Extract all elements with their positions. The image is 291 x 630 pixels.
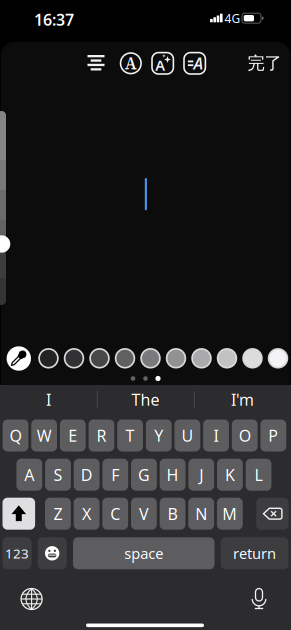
button[interactable]: K: [217, 459, 243, 491]
button[interactable]: I: [3, 386, 93, 412]
staticText: T: [126, 425, 135, 446]
button[interactable]: Text alignment: [86, 54, 106, 72]
button[interactable]: 完了: [242, 50, 286, 76]
button[interactable]: Gray 7: [191, 348, 212, 369]
button[interactable]: H: [160, 459, 185, 491]
button[interactable]: Q: [3, 419, 28, 451]
staticText: A: [24, 464, 34, 485]
staticText: N: [195, 503, 207, 524]
staticText: H: [167, 464, 179, 485]
button[interactable]: Writing tools: [151, 51, 175, 75]
button[interactable]: Emoji: [38, 537, 67, 569]
staticText: A: [125, 52, 137, 75]
button[interactable]: L: [246, 459, 271, 491]
button[interactable]: I'm: [197, 386, 287, 412]
staticText: V: [139, 503, 149, 524]
button[interactable]: Gray 8: [216, 348, 237, 369]
button[interactable]: M: [217, 498, 243, 530]
staticText: 完了: [247, 53, 281, 74]
button[interactable]: R: [88, 419, 114, 451]
staticText: S: [53, 464, 62, 485]
button[interactable]: C: [102, 498, 128, 530]
button[interactable]: Delete: [256, 498, 289, 530]
button[interactable]: T: [117, 419, 143, 451]
button[interactable]: E: [60, 419, 86, 451]
staticText: Y: [154, 425, 163, 446]
button[interactable]: Z: [45, 498, 71, 530]
button[interactable]: space: [73, 537, 214, 569]
staticText: G: [138, 464, 150, 485]
button[interactable]: Color picker: [7, 346, 31, 371]
staticText: A: [155, 55, 165, 75]
button[interactable]: The: [100, 386, 190, 412]
button[interactable]: X: [74, 498, 99, 530]
button[interactable]: B: [160, 498, 185, 530]
staticText: space: [124, 544, 163, 563]
button[interactable]: N: [188, 498, 214, 530]
button[interactable]: return: [221, 537, 288, 569]
staticText: M: [222, 503, 237, 524]
button[interactable]: 123: [2, 537, 32, 569]
staticText: P: [268, 425, 278, 446]
button[interactable]: Y: [146, 419, 172, 451]
staticText: I: [213, 425, 218, 446]
button[interactable]: W: [31, 419, 57, 451]
button[interactable]: Gray 1: [38, 348, 59, 369]
staticText: The: [131, 389, 159, 410]
button[interactable]: Dictate: [246, 586, 272, 612]
staticText: E: [68, 425, 77, 446]
staticText: I'm: [231, 389, 254, 410]
button[interactable]: Gray 6: [165, 348, 186, 369]
button[interactable]: Gray 3: [89, 348, 110, 369]
button[interactable]: Gray 2: [63, 348, 84, 369]
staticText: L: [255, 464, 263, 485]
button[interactable]: O: [232, 419, 258, 451]
button[interactable]: V: [131, 498, 157, 530]
staticText: J: [199, 464, 203, 485]
staticText: F: [111, 464, 119, 485]
staticText: I: [46, 389, 51, 410]
button[interactable]: S: [45, 459, 71, 491]
button[interactable]: A: [16, 459, 42, 491]
button[interactable]: Gray 5: [140, 348, 161, 369]
button[interactable]: Shift: [2, 498, 35, 530]
button[interactable]: J: [188, 459, 214, 491]
staticText: X: [82, 503, 91, 524]
staticText: 4G: [224, 10, 240, 26]
staticText: U: [181, 425, 193, 446]
staticText: 123: [5, 544, 29, 562]
staticText: W: [37, 425, 52, 446]
staticText: return: [233, 544, 276, 563]
button[interactable]: Gray 10: [267, 348, 288, 369]
button[interactable]: Next keyboard: [19, 586, 45, 612]
button[interactable]: G: [131, 459, 157, 491]
staticText: O: [239, 425, 251, 446]
staticText: Q: [9, 425, 21, 446]
staticText: Z: [53, 503, 62, 524]
staticText: C: [110, 503, 120, 524]
button[interactable]: I: [203, 419, 229, 451]
staticText: B: [168, 503, 178, 524]
button[interactable]: Gray 4: [114, 348, 135, 369]
staticText: K: [225, 464, 235, 485]
staticText: A: [194, 53, 204, 74]
button[interactable]: U: [174, 419, 200, 451]
staticText: D: [81, 464, 93, 485]
button[interactable]: Text format: [183, 51, 207, 75]
button[interactable]: Font style: [119, 51, 143, 75]
staticText: R: [96, 425, 106, 446]
staticText: 16:37: [34, 9, 74, 30]
button[interactable]: F: [102, 459, 128, 491]
button[interactable]: D: [74, 459, 100, 491]
button[interactable]: Gray 9: [242, 348, 263, 369]
button[interactable]: P: [260, 419, 286, 451]
